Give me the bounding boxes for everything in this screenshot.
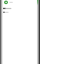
button[interactable] [3,7,12,10]
button[interactable] [4,0,8,4]
